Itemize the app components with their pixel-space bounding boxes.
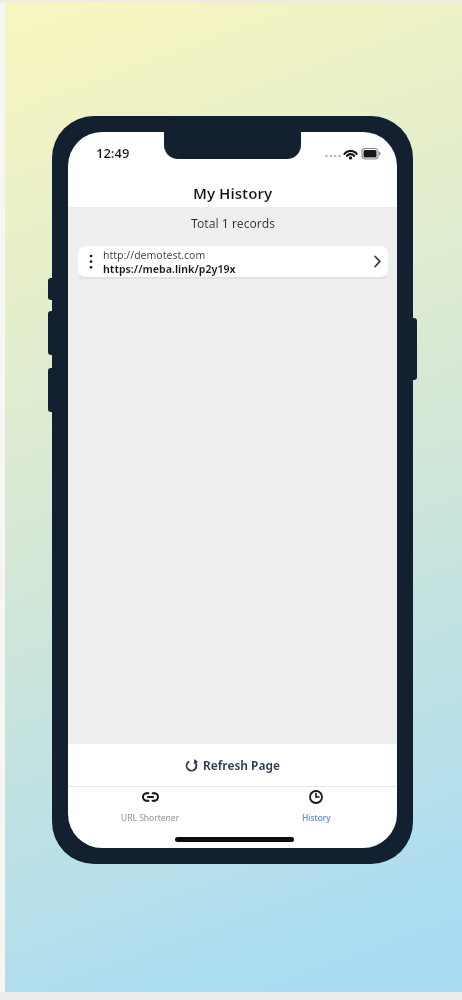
staticText: Refresh Page — [203, 757, 280, 773]
button[interactable]: History — [271, 790, 361, 824]
staticText: 12:49 — [96, 144, 130, 162]
staticText: https://meba.link/p2y19x — [103, 262, 236, 276]
button[interactable]: Refresh Page — [68, 744, 397, 786]
staticText: URL Shortener — [121, 812, 180, 824]
staticText: My History — [193, 183, 273, 203]
staticText: http://demotest.com — [103, 248, 206, 262]
button[interactable]: URL Shortener — [105, 792, 195, 824]
staticText: Total 1 records — [191, 215, 275, 232]
button[interactable]: http://demotest.com — [78, 246, 388, 277]
staticText: History — [302, 812, 331, 824]
